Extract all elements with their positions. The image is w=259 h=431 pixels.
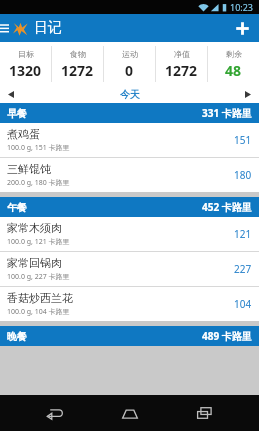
staticText: 151 <box>234 133 252 147</box>
staticText: 121 <box>234 227 252 241</box>
button[interactable]: Back <box>35 395 75 431</box>
staticText: 452 卡路里 <box>202 200 252 214</box>
staticText: 100.0 g, 151 卡路里 <box>7 143 70 153</box>
button[interactable]: Recent apps <box>184 395 224 431</box>
button[interactable]: 今天 <box>120 88 140 101</box>
staticText: 100.0 g, 121 卡路里 <box>7 237 70 247</box>
staticText: 227 <box>234 262 252 276</box>
staticText: 食物 <box>70 49 86 59</box>
button[interactable]: 家常回锅肉 <box>0 252 259 286</box>
button[interactable]: 午餐 <box>0 197 259 217</box>
staticText: 煮鸡蛋 <box>7 127 40 141</box>
staticText: 晚餐 <box>7 330 27 343</box>
button[interactable]: 运动 <box>104 42 155 86</box>
staticText: 100.0 g, 104 卡路里 <box>7 307 70 317</box>
staticText: 200.0 g, 180 卡路里 <box>7 178 70 188</box>
staticText: 家常回锅肉 <box>7 256 62 270</box>
button[interactable]: Home <box>110 395 150 431</box>
staticText: 100.0 g, 227 卡路里 <box>7 272 70 282</box>
staticText: 1272 <box>165 61 198 80</box>
button[interactable]: 香菇炒西兰花 <box>0 287 259 321</box>
staticText: 今天 <box>120 88 140 101</box>
button[interactable]: 早餐 <box>0 103 259 123</box>
button[interactable]: 食物 <box>52 42 103 86</box>
staticText: 331 卡路里 <box>202 106 252 120</box>
staticText: 剩余 <box>226 49 242 59</box>
staticText: 0 <box>125 61 134 80</box>
button[interactable]: 目标 <box>0 42 51 86</box>
button[interactable]: 净值 <box>156 42 207 86</box>
button[interactable]: 家常木须肉 <box>0 217 259 251</box>
staticText: 午餐 <box>7 201 27 214</box>
staticText: 目标 <box>18 49 34 59</box>
staticText: 1320 <box>9 61 42 80</box>
button[interactable]: 剩余 <box>208 42 259 86</box>
staticText: 家常木须肉 <box>7 221 62 235</box>
staticText: 180 <box>234 168 252 182</box>
button[interactable]: Previous day <box>0 86 22 103</box>
button[interactable]: Next day <box>237 86 259 103</box>
staticText: 104 <box>234 297 252 311</box>
button[interactable]: 煮鸡蛋 <box>0 123 259 157</box>
staticText: 净值 <box>174 49 190 59</box>
staticText: 48 <box>225 61 242 80</box>
button[interactable]: 晚餐 <box>0 326 259 346</box>
staticText: 三鲜馄饨 <box>7 162 51 176</box>
staticText: 香菇炒西兰花 <box>7 291 73 305</box>
staticText: 10:23 <box>230 1 254 13</box>
staticText: 日记 <box>34 19 62 37</box>
button[interactable]: Add entry <box>225 14 259 42</box>
staticText: 489 卡路里 <box>202 329 252 343</box>
button[interactable]: 三鲜馄饨 <box>0 158 259 192</box>
staticText: 运动 <box>122 49 138 59</box>
staticText: 早餐 <box>7 107 27 120</box>
staticText: 1272 <box>61 61 94 80</box>
button[interactable]: Menu <box>0 14 9 42</box>
